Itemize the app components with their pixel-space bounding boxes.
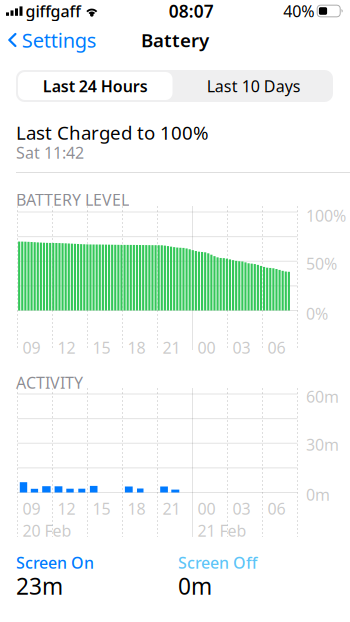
button[interactable]: Settings: [0, 22, 105, 58]
staticText: Screen On: [16, 552, 94, 573]
staticText: 15: [92, 337, 110, 358]
staticText: 18: [127, 337, 145, 358]
staticText: 0m: [306, 484, 330, 505]
staticText: 12: [57, 498, 75, 519]
staticText: 21 Feb: [197, 520, 246, 541]
staticText: 00: [197, 498, 215, 519]
staticText: 06: [267, 337, 285, 358]
staticText: 03: [232, 337, 250, 358]
staticText: 12: [57, 337, 75, 358]
staticText: 60m: [306, 386, 339, 407]
staticText: Last 10 Days: [207, 75, 301, 97]
staticText: Last 24 Hours: [43, 75, 148, 97]
staticText: 50%: [306, 253, 337, 274]
button[interactable]: Last 24 Hours: [16, 70, 174, 102]
staticText: 40%: [283, 0, 314, 22]
staticText: 09: [22, 337, 40, 358]
staticText: Sat 11:42: [16, 142, 84, 163]
staticText: 100%: [306, 205, 346, 226]
staticText: 18: [127, 498, 145, 519]
staticText: 00: [197, 337, 215, 358]
staticText: 0%: [306, 303, 328, 324]
staticText: 03: [232, 498, 250, 519]
staticText: 20 Feb: [22, 520, 71, 541]
staticText: 30m: [306, 434, 339, 455]
staticText: giffgaff: [25, 0, 80, 22]
staticText: 15: [92, 498, 110, 519]
staticText: 0m: [178, 571, 212, 601]
button[interactable]: Last 10 Days: [174, 70, 333, 102]
staticText: Settings: [22, 27, 97, 53]
staticText: 09: [22, 498, 40, 519]
staticText: Screen Off: [178, 552, 257, 573]
staticText: 06: [267, 498, 285, 519]
staticText: 23m: [16, 571, 63, 601]
staticText: 21: [162, 337, 180, 358]
staticText: Battery: [141, 28, 209, 52]
staticText: BATTERY LEVEL: [16, 189, 129, 210]
staticText: ACTIVITY: [16, 372, 83, 393]
staticText: 08:07: [169, 0, 214, 22]
staticText: 21: [162, 498, 180, 519]
staticText: Last Charged to 100%: [16, 120, 209, 145]
